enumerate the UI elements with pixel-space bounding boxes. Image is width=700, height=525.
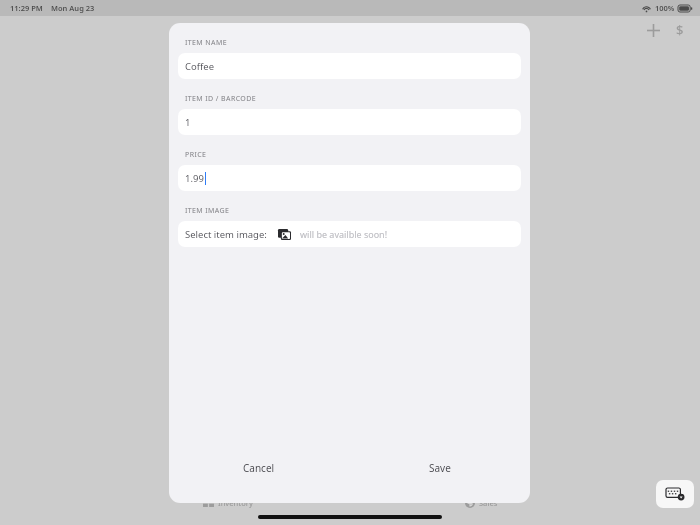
staticText: Cancel	[243, 461, 275, 475]
button[interactable]: Sales	[465, 498, 498, 508]
staticText: 1	[185, 116, 191, 129]
staticText: PRICE	[185, 150, 207, 160]
staticText: $	[676, 21, 684, 39]
button[interactable]: Dismiss keyboard	[656, 480, 694, 508]
button[interactable]: 1	[178, 109, 521, 135]
staticText: Coffee	[185, 60, 215, 73]
staticText: ITEM NAME	[185, 38, 227, 48]
staticText: Select item image:	[185, 228, 267, 241]
staticText: 100%	[655, 3, 675, 13]
staticText: ITEM ID / BARCODE	[185, 94, 256, 104]
staticText: Inventory	[218, 498, 253, 508]
button[interactable]: Select item image:	[178, 221, 521, 247]
staticText: 11:29 PM	[10, 3, 43, 13]
staticText: will be availble soon!	[300, 228, 388, 240]
staticText: Mon Aug 23	[51, 3, 95, 13]
button[interactable]: Sales	[668, 18, 692, 42]
button[interactable]: Save	[349, 455, 530, 481]
button[interactable]: 1.99	[178, 165, 521, 191]
button[interactable]: Coffee	[178, 53, 521, 79]
staticText: Sales	[479, 498, 498, 508]
button[interactable]: Choose photo	[277, 227, 291, 241]
button[interactable]: Inventory	[203, 498, 253, 508]
button[interactable]: Add item	[641, 18, 665, 42]
staticText: Save	[429, 461, 451, 475]
button[interactable]: Cancel	[169, 455, 349, 481]
staticText: ITEM IMAGE	[185, 206, 230, 216]
staticText: 1.99	[185, 172, 204, 185]
